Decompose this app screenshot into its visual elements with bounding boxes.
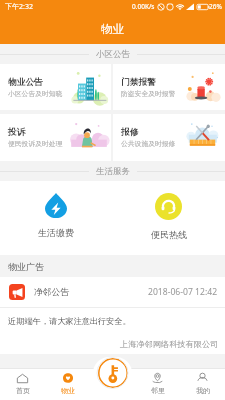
staticText: 物业公告 — [8, 77, 43, 88]
staticText: 小区公告及时知晓 — [8, 89, 63, 98]
button[interactable]: 我的 — [180, 368, 225, 400]
button[interactable]: 首页 — [0, 368, 45, 400]
staticText: 便民热线 — [151, 229, 187, 240]
staticText: 2018-06-07 12:42 — [148, 286, 218, 298]
staticText: 首页 — [16, 386, 30, 395]
button[interactable]: 物业 — [45, 368, 90, 400]
button[interactable]: 物业公告 — [0, 64, 111, 110]
staticText: 防盗安全及时报警 — [121, 89, 176, 98]
staticText: 物业 — [101, 22, 124, 36]
staticText: 物业广告 — [8, 261, 44, 272]
staticText: 邻里 — [151, 386, 165, 395]
button[interactable]: 生活缴费 — [0, 181, 112, 255]
button[interactable]: 门禁报警 — [113, 64, 225, 110]
staticText: 报修 — [121, 127, 139, 138]
button[interactable]: 净邻公告 — [0, 277, 225, 354]
staticText: 净邻公告 — [34, 287, 70, 298]
staticText: 下午2:32 — [5, 2, 33, 12]
button[interactable]: 报修 — [113, 114, 225, 161]
button[interactable]: 门禁钥匙 — [98, 358, 128, 388]
staticText: 公共设施及时报修 — [121, 139, 176, 148]
staticText: 26% — [209, 2, 222, 11]
staticText: 物业 — [61, 386, 75, 395]
staticText: 门禁报警 — [121, 77, 156, 88]
staticText: 近期端午，请大家注意出行安全。 — [8, 316, 131, 326]
button[interactable]: 便民热线 — [112, 181, 225, 255]
staticText: 上海净邻网络科技有限公司 — [120, 339, 219, 349]
button[interactable]: 邻里 — [135, 368, 180, 400]
staticText: 生活服务 — [96, 166, 130, 177]
staticText: 我的 — [196, 386, 210, 395]
staticText: 0.00K/s — [132, 2, 155, 11]
staticText: 投诉 — [8, 127, 26, 138]
staticText: 小区公告 — [96, 49, 130, 60]
staticText: 便民投诉及时处理 — [8, 139, 63, 148]
button[interactable]: 投诉 — [0, 114, 111, 161]
staticText: 生活缴费 — [38, 227, 74, 238]
